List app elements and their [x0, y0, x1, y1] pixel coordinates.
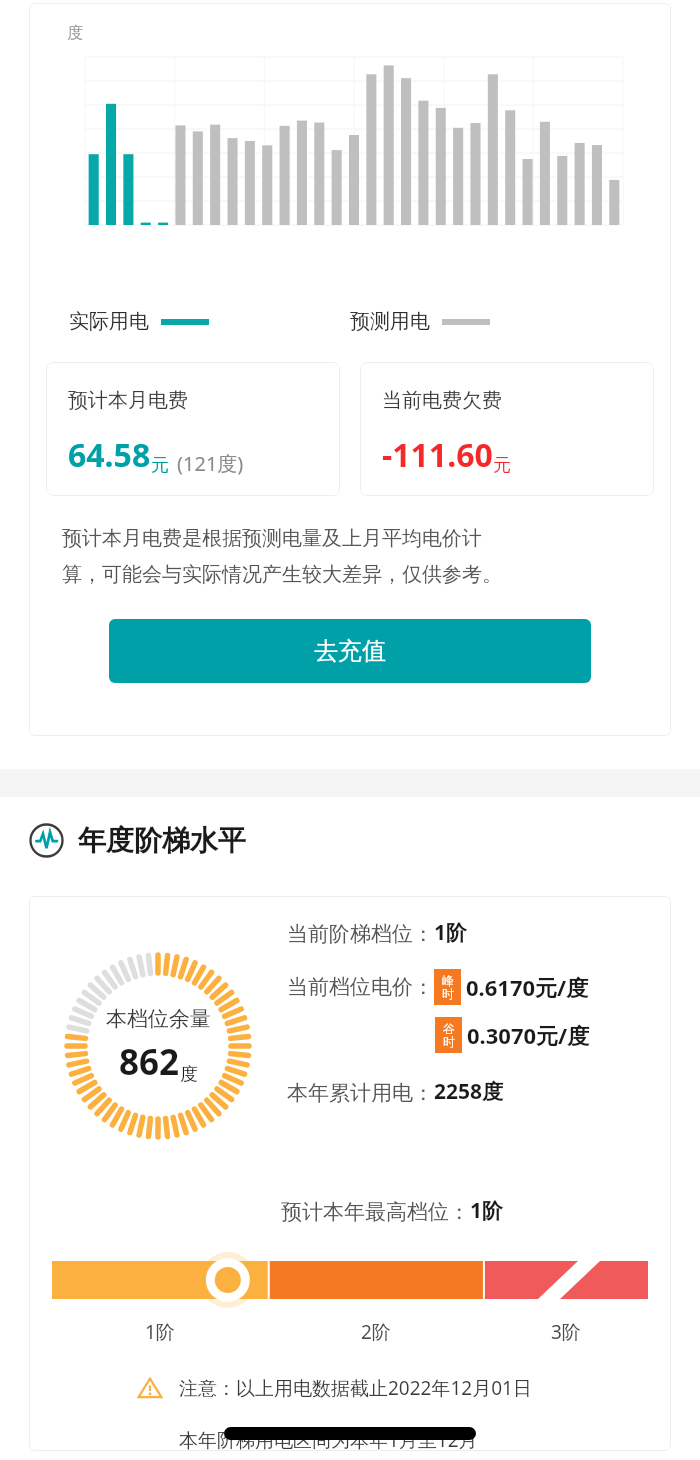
staticText: -111.60 — [382, 433, 493, 477]
staticText: 元 — [151, 454, 169, 477]
staticText: 注意：以上用电数据截止2022年12月01日 — [179, 1375, 532, 1401]
button[interactable]: 预计本月电费 — [46, 362, 340, 496]
staticText: 862 — [119, 1038, 180, 1086]
staticText: 去充值 — [314, 636, 386, 666]
staticText: 0.6170元/度 — [466, 972, 589, 1002]
staticText: 2阶 — [361, 1319, 391, 1345]
staticText: 当前档位电价： — [287, 974, 434, 1000]
staticText: 64.58 — [68, 433, 151, 477]
staticText: 本年累计用电： — [287, 1080, 434, 1106]
staticText: 实际用电 — [69, 309, 149, 334]
staticText: 预测用电 — [350, 309, 430, 334]
staticText: 谷 时 — [443, 1021, 455, 1050]
button[interactable]: 去充值 — [109, 619, 591, 683]
staticText: 2258度 — [434, 1077, 504, 1106]
staticText: 0.3070元/度 — [467, 1020, 590, 1050]
staticText: 本档位余量 — [106, 1006, 211, 1032]
staticText: 3阶 — [551, 1319, 581, 1345]
staticText: 预计本月电费是根据预测电量及上月平均电价计 算，可能会与实际情况产生较大差异，仅… — [62, 526, 502, 587]
staticText: 1阶 — [434, 918, 468, 947]
staticText: 1阶 — [470, 1196, 504, 1225]
staticText: (121度) — [177, 450, 244, 477]
button[interactable]: 年度阶梯水平 — [29, 823, 700, 858]
staticText: 度 — [67, 23, 83, 43]
staticText: 元 — [493, 454, 511, 477]
button[interactable]: 当前电费欠费 — [360, 362, 654, 496]
staticText: 预计本月电费 — [68, 388, 188, 413]
other: 年度阶梯水平 — [29, 823, 64, 858]
staticText: 度 — [180, 1063, 198, 1086]
staticText: 当前阶梯档位： — [287, 921, 434, 947]
staticText: 1阶 — [145, 1319, 175, 1345]
staticText: 峰 时 — [442, 973, 454, 1002]
staticText: 当前电费欠费 — [382, 388, 502, 413]
staticText: 本年阶梯用电区间为本年1月至12月 — [179, 1427, 478, 1451]
staticText: 预计本年最高档位： — [281, 1199, 470, 1225]
staticText: 年度阶梯水平 — [78, 823, 246, 858]
